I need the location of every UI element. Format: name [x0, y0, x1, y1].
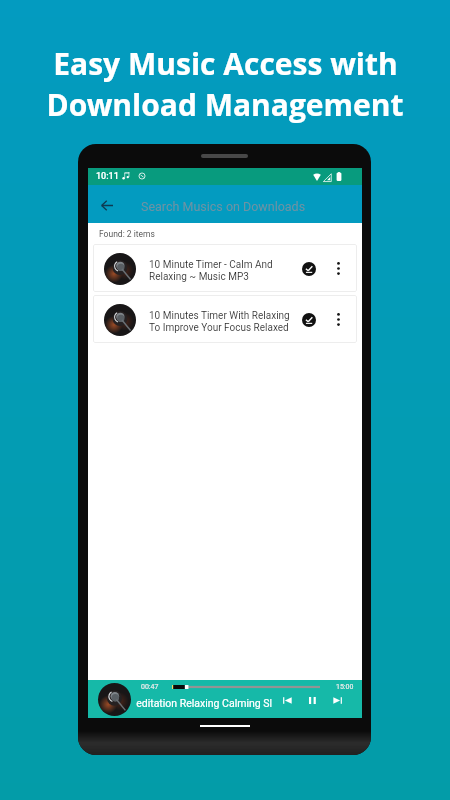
- staticText: To Improve Your Focus Relaxed: [149, 322, 289, 334]
- button[interactable]: 10 Minute Timer - Calm And: [93, 244, 357, 292]
- button[interactable]: Now playing artwork: [98, 683, 131, 716]
- staticText: Found: 2 items: [99, 229, 155, 239]
- staticText: 10 Minutes Timer With Relaxing: [149, 310, 290, 322]
- button[interactable]: Next: [327, 690, 348, 711]
- staticText: Easy Music Access with: [53, 43, 398, 84]
- button[interactable]: Download: [298, 309, 320, 331]
- staticText: 10 Minute Timer - Calm And: [149, 259, 273, 271]
- button[interactable]: 10 Minutes Timer With Relaxing: [93, 295, 357, 343]
- staticText: 00:47: [141, 683, 159, 691]
- staticText: 15:00: [336, 683, 354, 691]
- button[interactable]: Pause: [302, 690, 323, 711]
- staticText: 10:11: [96, 171, 119, 182]
- button[interactable]: Download: [298, 258, 320, 280]
- button[interactable]: More options: [328, 258, 349, 279]
- button[interactable]: Back: [95, 193, 119, 217]
- staticText: Search Musics on Downloads: [141, 199, 306, 214]
- button[interactable]: Previous: [277, 690, 298, 711]
- staticText: Relaxing ~ Music MP3: [149, 271, 249, 283]
- staticText: Meditation Relaxing Calming Sleep: [136, 697, 263, 709]
- button[interactable]: More options: [328, 309, 349, 330]
- staticText: Download Management: [46, 84, 404, 125]
